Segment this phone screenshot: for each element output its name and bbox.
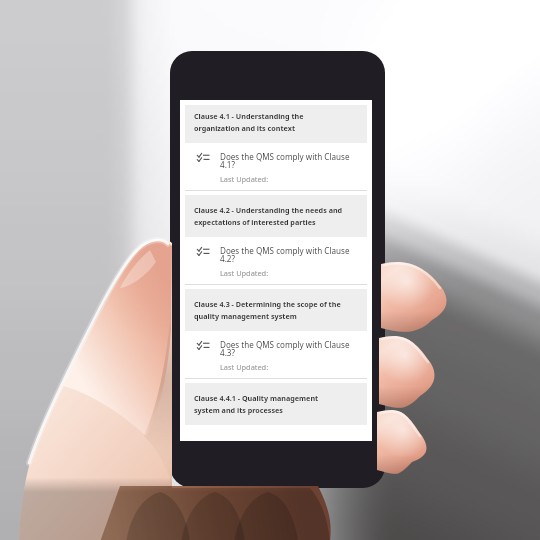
staticText: Clause 4.2 - Understanding the needs and… <box>194 205 345 227</box>
staticText: Clause 4.1 - Understanding the organizat… <box>194 111 345 133</box>
staticText: Clause 4.4.1 - Quality management system… <box>194 393 345 415</box>
staticText: Clause 4.3 - Determining the scope of th… <box>194 299 345 321</box>
staticText: Last Updated: <box>220 362 269 372</box>
button[interactable]: Does the QMS comply with Clause 4.2? <box>185 238 367 284</box>
button[interactable]: Clause 4.1 - Understanding the organizat… <box>185 105 367 143</box>
staticText: Does the QMS comply with Clause 4.1? <box>220 151 363 170</box>
staticText: Last Updated: <box>220 174 269 184</box>
staticText: Does the QMS comply with Clause 4.3? <box>220 339 363 358</box>
button[interactable]: Clause 4.3 - Determining the scope of th… <box>185 289 367 331</box>
staticText: Does the QMS comply with Clause 4.2? <box>220 245 363 264</box>
staticText: Last Updated: <box>220 268 269 278</box>
button[interactable]: Does the QMS comply with Clause 4.1? <box>185 144 367 190</box>
button[interactable]: Clause 4.4.1 - Quality management system… <box>185 383 367 425</box>
button[interactable]: Does the QMS comply with Clause 4.3? <box>185 332 367 378</box>
button[interactable]: Clause 4.2 - Understanding the needs and… <box>185 195 367 237</box>
